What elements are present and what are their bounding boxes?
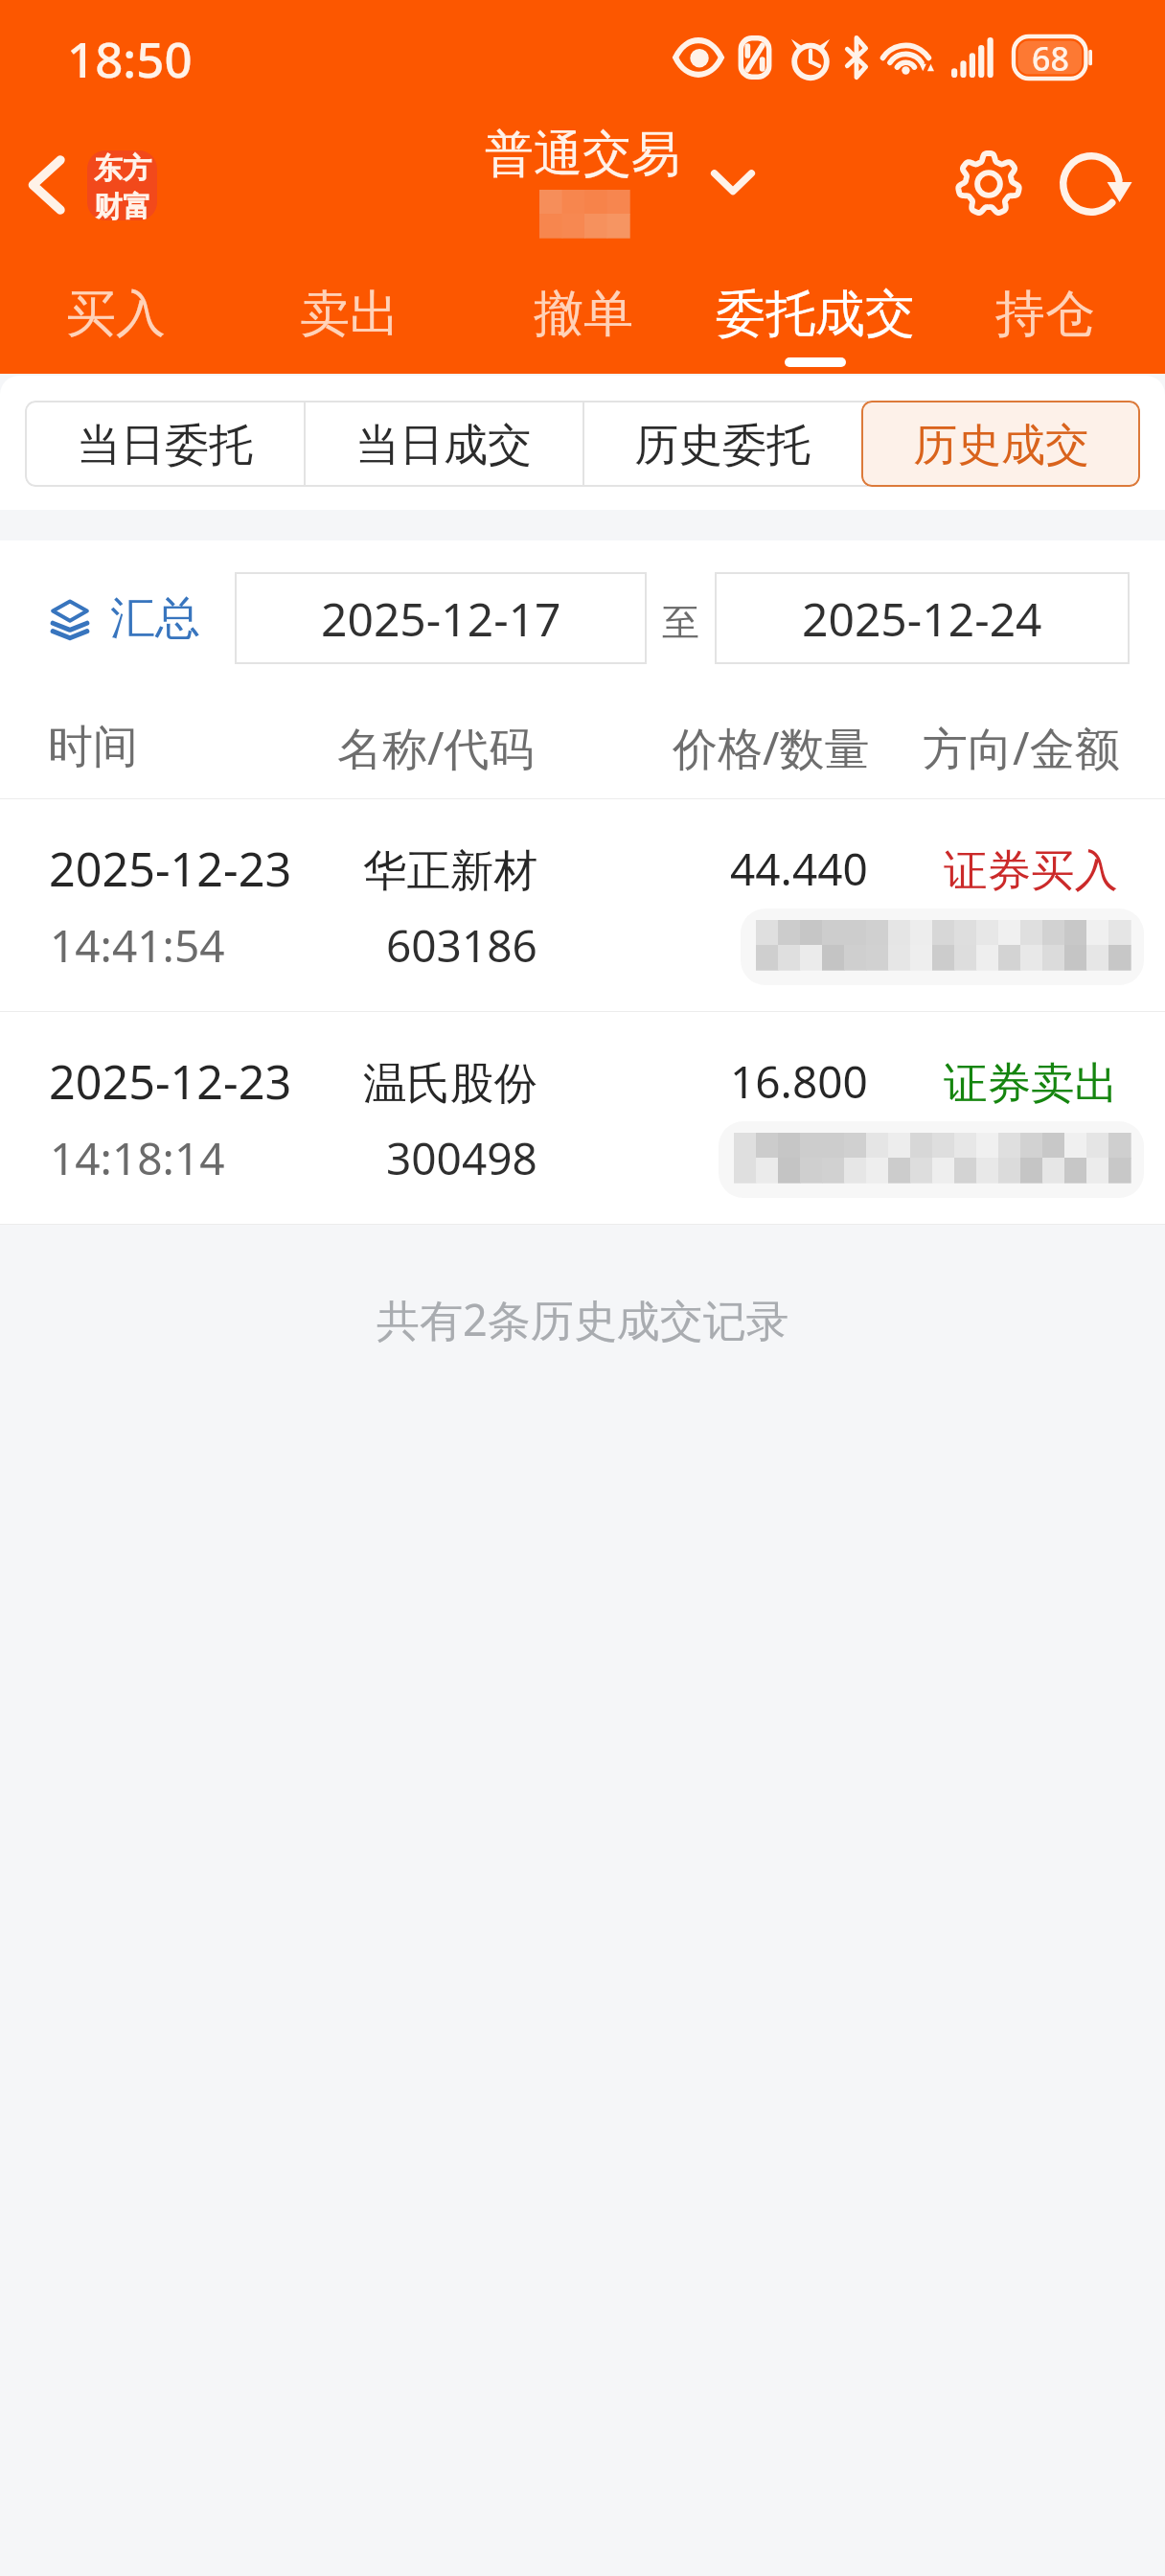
button[interactable]: 卖出 [277,257,423,376]
staticText: 当日委托 [77,418,253,473]
button[interactable]: Back [8,147,84,223]
button[interactable]: 汇总 [52,590,200,647]
staticText: 财富 [94,189,151,220]
button[interactable]: 当日委托 [25,401,304,487]
staticText: 68 [1032,36,1069,80]
button[interactable]: 普通交易 [485,124,680,185]
button[interactable]: 2025-12-23 [0,799,1165,1011]
staticText: 证券卖出 [944,1056,1118,1111]
staticText: 300498 [386,1128,537,1188]
button[interactable]: East Money logo [87,150,157,220]
staticText: 证券买入 [944,843,1118,898]
staticText: 14:18:14 [50,1128,225,1188]
staticText: 至 [662,599,699,646]
staticText: 2025-12-24 [802,587,1042,650]
staticText: 历史成交 [913,418,1089,473]
staticText: 14:41:54 [50,915,225,976]
staticText: 卖出 [300,283,400,346]
button[interactable]: 当日成交 [304,401,582,487]
staticText: 603186 [386,915,537,976]
staticText: 2025-12-23 [49,1049,292,1113]
staticText: 2025-12-17 [321,587,561,650]
staticText: 普通交易 [485,124,680,185]
staticText: 时间 [48,719,138,775]
staticText: 汇总 [110,590,200,647]
staticText: 委托成交 [716,283,915,346]
staticText: 历史委托 [634,418,811,473]
staticText: 共有2条历史成交记录 [377,1290,789,1348]
button[interactable]: Settings [946,141,1032,227]
staticText: 16.800 [730,1051,868,1112]
button[interactable]: 历史成交 [861,401,1140,487]
button[interactable]: 2025-12-23 [0,1012,1165,1224]
staticText: 撤单 [534,283,633,346]
staticText: 温氏股份 [363,1056,537,1111]
button[interactable]: 撤单 [511,257,656,376]
staticText: 持仓 [995,283,1095,346]
staticText: 当日成交 [355,418,532,473]
staticText: 18:50 [67,25,193,91]
button[interactable]: 历史委托 [582,401,861,487]
button[interactable]: 2025-12-24 [715,572,1130,664]
button[interactable]: 委托成交 [693,257,938,376]
button[interactable]: 买入 [43,257,189,376]
staticText: 44.440 [730,839,868,899]
staticText: 名称/代码 [337,717,535,778]
staticText: 华正新材 [363,843,537,898]
staticText: 方向/金额 [923,717,1120,778]
button[interactable]: Switch account [699,157,766,207]
button[interactable]: Refresh [1056,141,1142,227]
staticText: 东方 [94,150,151,187]
staticText: 买入 [66,283,166,346]
button[interactable]: 持仓 [972,257,1118,376]
staticText: 价格/数量 [673,717,870,778]
staticText: 2025-12-23 [49,837,292,900]
button[interactable]: 2025-12-17 [235,572,647,664]
